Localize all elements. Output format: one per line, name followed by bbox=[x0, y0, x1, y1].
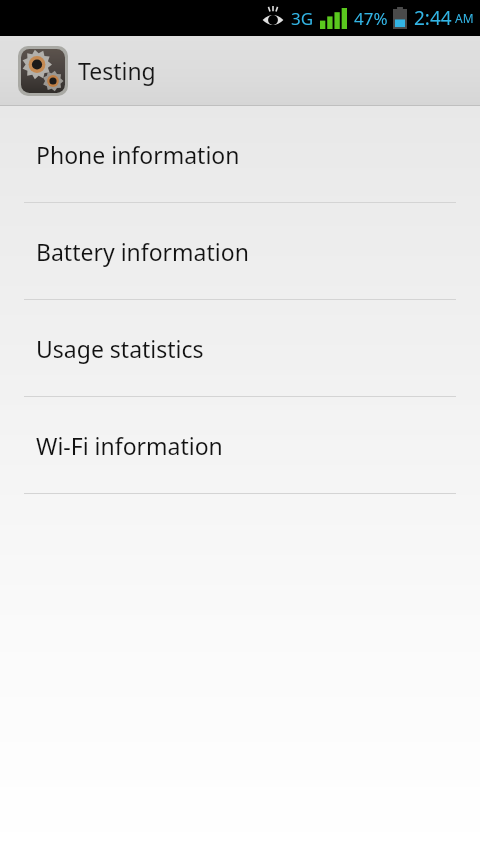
staticText: Testing bbox=[78, 55, 156, 86]
staticText: Phone information bbox=[36, 139, 240, 170]
staticText: Battery information bbox=[36, 236, 249, 267]
other: Testing app icon bbox=[18, 46, 68, 96]
button[interactable]: Testing app icon bbox=[0, 36, 168, 105]
button[interactable]: Wi-Fi information bbox=[0, 397, 480, 493]
staticText: 3G bbox=[291, 7, 314, 30]
button[interactable]: Battery information bbox=[0, 203, 480, 299]
button[interactable]: Usage statistics bbox=[0, 300, 480, 396]
staticText: Wi-Fi information bbox=[36, 430, 223, 461]
staticText: AM bbox=[455, 10, 474, 26]
staticText: Usage statistics bbox=[36, 333, 204, 364]
staticText: 2:44 bbox=[414, 5, 452, 31]
button[interactable]: Phone information bbox=[0, 106, 480, 202]
staticText: 47% bbox=[354, 7, 388, 30]
